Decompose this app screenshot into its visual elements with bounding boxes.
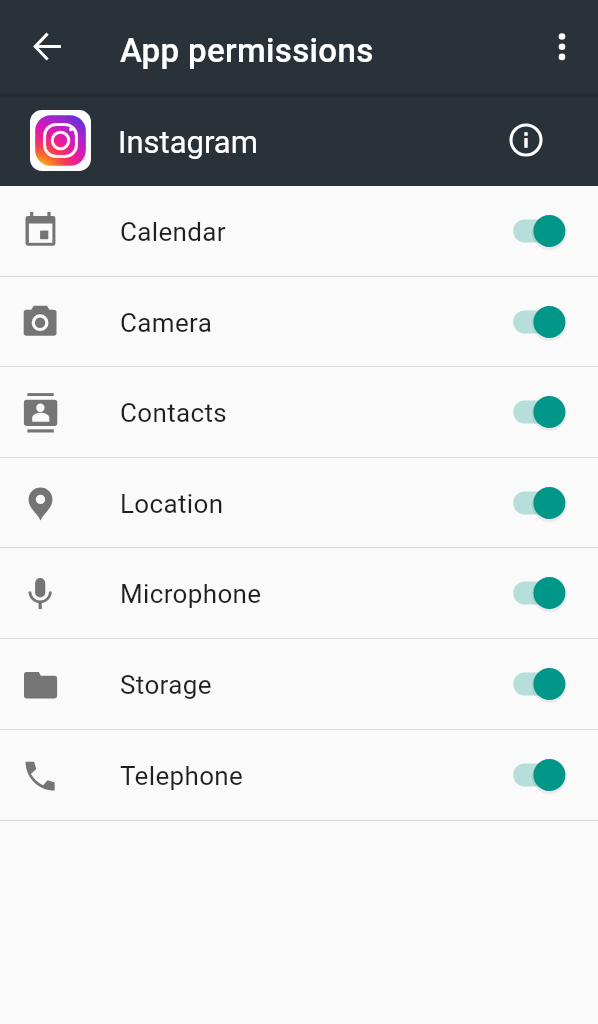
staticText: App permissions — [120, 31, 374, 70]
staticText: Storage — [120, 670, 212, 700]
button[interactable]: Storage — [0, 639, 598, 729]
staticText: Instagram — [118, 124, 258, 160]
button[interactable]: Camera — [0, 277, 598, 366]
button[interactable]: Calendar — [0, 186, 598, 276]
button[interactable]: More options — [536, 21, 588, 73]
button[interactable]: Location — [0, 458, 598, 547]
staticText: Microphone — [120, 579, 262, 609]
staticText: Contacts — [120, 398, 228, 428]
button[interactable]: Microphone — [0, 548, 598, 638]
button[interactable]: Contacts — [0, 367, 598, 457]
staticText: Calendar — [120, 217, 226, 247]
staticText: Telephone — [120, 761, 244, 791]
button[interactable]: Telephone — [0, 730, 598, 820]
button[interactable]: App info — [504, 118, 548, 162]
staticText: Camera — [120, 308, 213, 338]
button[interactable]: Navigate up — [16, 16, 77, 77]
staticText: Location — [120, 489, 224, 519]
